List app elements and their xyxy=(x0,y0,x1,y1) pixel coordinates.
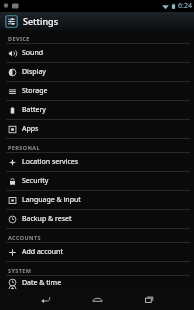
button[interactable]: Back xyxy=(34,289,56,310)
button[interactable]: Language & input xyxy=(0,191,194,209)
button[interactable]: Battery xyxy=(0,101,194,119)
staticText: Add account xyxy=(22,247,63,257)
button[interactable]: Home xyxy=(86,289,108,310)
button[interactable]: Add account xyxy=(0,243,194,261)
staticText: Date & time xyxy=(22,278,62,288)
staticText: Settings xyxy=(23,15,59,27)
button[interactable]: Security xyxy=(0,172,194,190)
button[interactable]: Settings xyxy=(0,12,194,30)
button[interactable]: Display xyxy=(0,63,194,81)
staticText: Backup & reset xyxy=(22,214,72,224)
staticText: 6:24 xyxy=(178,1,192,11)
button[interactable]: Apps xyxy=(0,120,194,138)
staticText: Display xyxy=(22,67,46,77)
staticText: PERSONAL xyxy=(8,144,41,151)
button[interactable]: Sound xyxy=(0,44,194,62)
button[interactable]: Backup & reset xyxy=(0,210,194,228)
staticText: DEVICE xyxy=(8,35,30,42)
staticText: Sound xyxy=(22,48,44,58)
button[interactable]: Recent apps xyxy=(138,289,160,310)
staticText: SYSTEM xyxy=(8,267,32,274)
staticText: Storage xyxy=(22,86,48,96)
button[interactable]: Date & time xyxy=(0,276,194,289)
staticText: ACCOUNTS xyxy=(8,234,41,241)
staticText: Apps xyxy=(22,124,39,134)
staticText: Location services xyxy=(22,157,79,167)
other: Settings xyxy=(5,15,18,28)
staticText: Language & input xyxy=(22,195,81,205)
staticText: Security xyxy=(22,176,49,186)
button[interactable]: Location services xyxy=(0,153,194,171)
staticText: Battery xyxy=(22,105,46,115)
button[interactable]: Storage xyxy=(0,82,194,100)
